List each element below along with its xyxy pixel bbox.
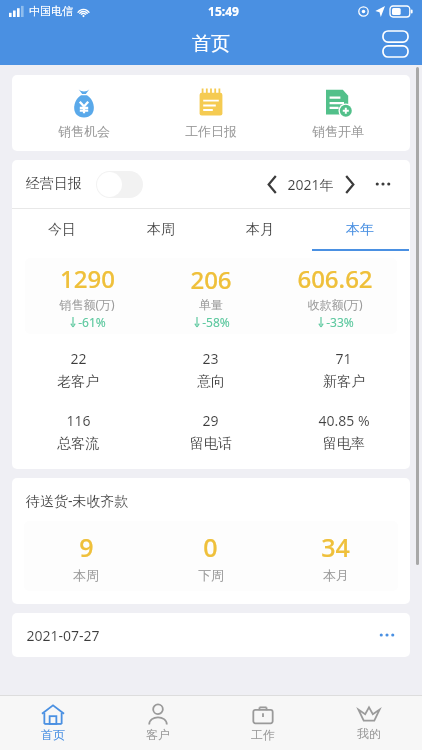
staticText: 中国电信	[29, 4, 73, 18]
button[interactable]: 2021-07-27	[12, 613, 410, 657]
staticText: 销售开单	[312, 123, 364, 139]
staticText: 本年	[346, 221, 374, 239]
staticText: 留电话	[190, 435, 232, 453]
staticText: 下周	[198, 567, 224, 583]
staticText: 本周	[73, 567, 99, 583]
button[interactable]: 销售开单	[283, 84, 393, 143]
button[interactable]: 我的	[316, 696, 422, 750]
staticText: 老客户	[57, 373, 99, 391]
button[interactable]: 客户	[105, 696, 210, 750]
staticText: 23	[202, 349, 219, 368]
staticText: 2021年	[287, 175, 334, 194]
button[interactable]: More options	[370, 171, 396, 197]
button[interactable]: 工作日报	[156, 84, 266, 143]
staticText: 工作日报	[185, 123, 237, 139]
button[interactable]: 工作	[210, 696, 316, 750]
button[interactable]: 本年	[310, 209, 410, 251]
button[interactable]: 40.85 %	[277, 411, 410, 453]
button[interactable]: 1290	[25, 262, 149, 330]
staticText: 销售机会	[58, 123, 110, 139]
staticText: 首页	[41, 727, 65, 742]
button[interactable]: 34	[273, 530, 398, 583]
staticText: 客户	[146, 727, 170, 742]
staticText: 首页	[192, 32, 230, 56]
button[interactable]: 23	[144, 349, 277, 391]
staticText: 意向	[197, 373, 225, 391]
staticText: 新客户	[323, 373, 365, 391]
staticText: 0	[203, 530, 218, 564]
button[interactable]: 606.62	[273, 262, 397, 330]
staticText: 本月	[323, 567, 349, 583]
button[interactable]: 今日	[12, 209, 111, 251]
staticText: -58%	[202, 314, 230, 330]
staticText: -33%	[326, 314, 354, 330]
staticText: 29	[202, 411, 219, 430]
button[interactable]: 206	[149, 263, 273, 330]
button[interactable]: Scan	[378, 27, 412, 61]
staticText: 单量	[199, 297, 223, 312]
button[interactable]: 销售机会	[29, 84, 139, 143]
staticText: 待送货-未收齐款	[26, 491, 129, 510]
staticText: 34	[321, 530, 350, 564]
button[interactable]: 22	[12, 349, 144, 391]
button[interactable]: 71	[277, 349, 410, 391]
staticText: 收款额(万)	[307, 296, 363, 312]
button[interactable]: 9	[24, 530, 148, 583]
staticText: 22	[70, 349, 87, 368]
button[interactable]: 0	[148, 530, 273, 583]
staticText: 116	[66, 411, 91, 430]
staticText: 206	[190, 263, 232, 296]
staticText: 本周	[147, 221, 175, 239]
staticText: 1290	[60, 262, 115, 295]
staticText: -61%	[78, 314, 106, 330]
button[interactable]: Toggle report	[96, 171, 143, 198]
button[interactable]: Next year	[334, 169, 364, 199]
staticText: 9	[79, 530, 94, 564]
staticText: 2021-07-27	[26, 626, 100, 645]
staticText: 71	[335, 349, 352, 368]
button[interactable]: Previous year	[257, 169, 287, 199]
staticText: 我的	[357, 726, 381, 741]
button[interactable]: 116	[12, 411, 144, 453]
staticText: 销售额(万)	[59, 296, 115, 312]
staticText: 40.85 %	[318, 411, 370, 430]
staticText: 15:49	[208, 3, 239, 19]
button[interactable]: 本周	[111, 209, 210, 251]
staticText: 本月	[246, 221, 274, 239]
staticText: 留电率	[323, 435, 365, 453]
button[interactable]: 29	[144, 411, 277, 453]
staticText: 工作	[251, 727, 275, 742]
staticText: 总客流	[57, 435, 99, 453]
staticText: 经营日报	[26, 175, 82, 193]
button[interactable]: 本月	[210, 209, 310, 251]
staticText: 今日	[48, 221, 76, 239]
staticText: 606.62	[297, 262, 373, 295]
button[interactable]: 首页	[0, 696, 105, 750]
